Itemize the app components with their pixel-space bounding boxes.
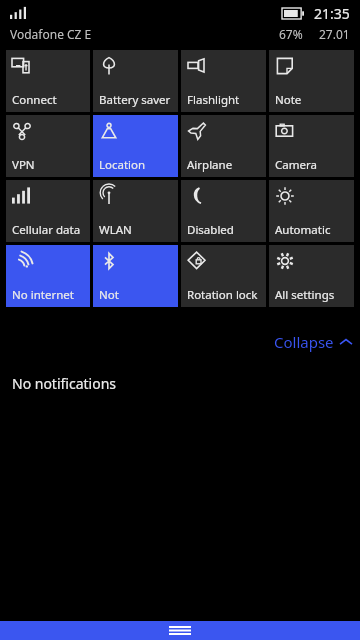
button[interactable]: All settings: [269, 245, 354, 307]
staticText: Cellular data: [12, 222, 81, 238]
button[interactable]: Location: [93, 115, 178, 177]
staticText: 21:35: [314, 4, 350, 23]
staticText: Connect: [12, 92, 57, 108]
button[interactable]: Collapse: [0, 332, 352, 352]
staticText: Flashlight: [187, 92, 240, 108]
button[interactable]: Rotation lock: [181, 245, 266, 307]
staticText: All settings: [275, 287, 335, 303]
button[interactable]: Not connected: [93, 245, 178, 307]
button[interactable]: Flashlight: [181, 50, 266, 112]
staticText: Location: [99, 157, 146, 173]
button[interactable]: WLAN hotspot: [93, 180, 178, 242]
button[interactable]: Cellular data: [6, 180, 90, 242]
button[interactable]: No internet: [6, 245, 90, 307]
button[interactable]: Camera: [269, 115, 354, 177]
button[interactable]: VPN: [6, 115, 90, 177]
staticText: Not connected: [99, 287, 175, 303]
button[interactable]: Menu: [0, 621, 360, 640]
button[interactable]: Connect: [6, 50, 90, 112]
staticText: VPN: [12, 157, 35, 173]
staticText: Camera: [275, 157, 317, 173]
staticText: Rotation lock: [187, 287, 258, 303]
button[interactable]: Automatic: [269, 180, 354, 242]
staticText: Collapse: [274, 332, 334, 352]
staticText: Automatic: [275, 222, 331, 238]
staticText: No internet: [12, 287, 74, 303]
staticText: Note: [275, 92, 302, 108]
staticText: Disabled: [187, 222, 234, 238]
staticText: 27.01: [319, 26, 350, 42]
button[interactable]: Disabled: [181, 180, 266, 242]
staticText: Battery saver: [99, 92, 171, 108]
staticText: 67%: [279, 26, 303, 42]
button[interactable]: Battery saver: [93, 50, 178, 112]
button[interactable]: Note: [269, 50, 354, 112]
staticText: WLAN hotspot: [99, 222, 175, 238]
staticText: Airplane mode: [187, 157, 263, 173]
staticText: No notifications: [12, 374, 117, 393]
staticText: Vodafone CZ E: [10, 26, 92, 42]
button[interactable]: Airplane mode: [181, 115, 266, 177]
